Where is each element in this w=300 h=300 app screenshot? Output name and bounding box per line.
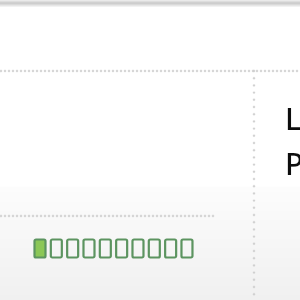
staticText: L: [285, 98, 300, 139]
staticText: P: [285, 143, 300, 184]
button[interactable]: Score 1 out of 10: [33, 238, 194, 259]
